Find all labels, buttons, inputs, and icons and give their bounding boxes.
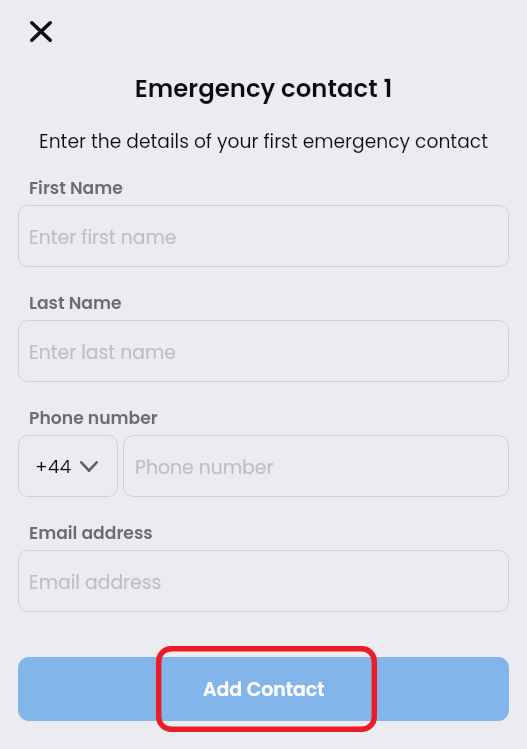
staticText: Enter last name [29,339,176,365]
button[interactable]: Phone number [123,435,509,497]
staticText: Enter first name [29,224,177,250]
button[interactable]: Close [18,9,63,54]
staticText: Last Name [29,291,122,315]
button[interactable]: Email address [18,550,509,612]
button[interactable]: Add Contact [18,657,509,721]
staticText: Emergency contact 1 [0,71,527,105]
staticText: Enter the details of your first emergenc… [0,128,527,154]
staticText: Phone number [135,454,274,480]
button[interactable]: Country code +44 [18,435,118,497]
staticText: First Name [29,176,123,200]
button[interactable]: Enter first name [18,205,509,267]
button[interactable]: Enter last name [18,320,509,382]
staticText: Phone number [29,406,158,430]
staticText: Add Contact [203,676,325,702]
staticText: +44 [35,453,72,479]
staticText: Email address [29,569,162,595]
staticText: Email address [29,521,153,545]
